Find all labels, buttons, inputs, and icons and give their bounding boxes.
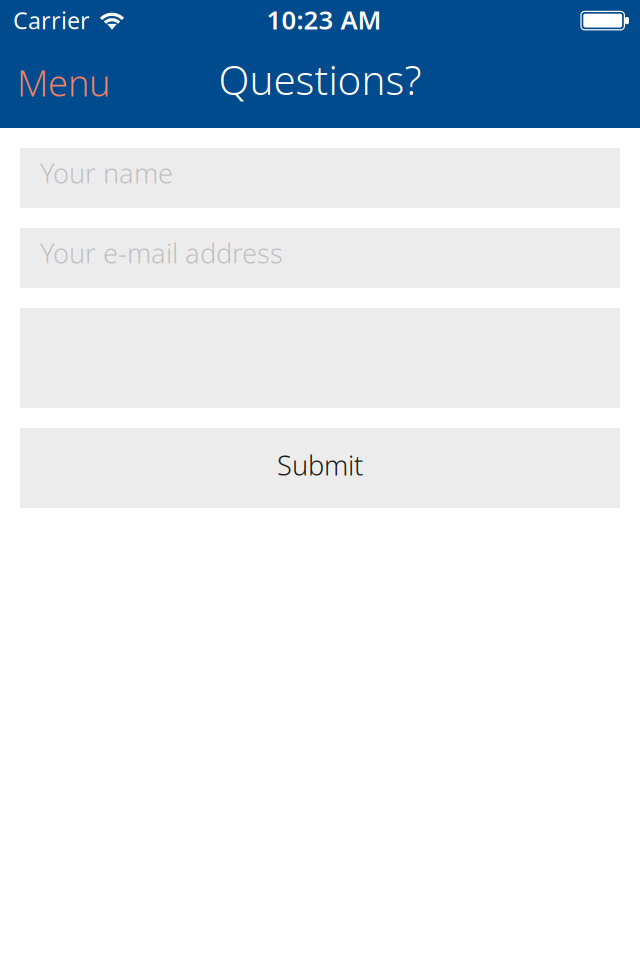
- button[interactable]: Your name: [20, 148, 620, 208]
- staticText: Your e-mail address: [40, 235, 283, 271]
- staticText: Your name: [40, 155, 173, 191]
- button[interactable]: Submit: [20, 428, 620, 508]
- staticText: Menu: [17, 59, 110, 106]
- button[interactable]: Your e-mail address: [20, 228, 620, 288]
- staticText: Carrier: [13, 5, 90, 36]
- staticText: 10:23 AM: [266, 2, 381, 37]
- staticText: Submit: [277, 447, 363, 483]
- staticText: Questions?: [218, 53, 421, 106]
- button[interactable]: Menu: [0, 40, 128, 128]
